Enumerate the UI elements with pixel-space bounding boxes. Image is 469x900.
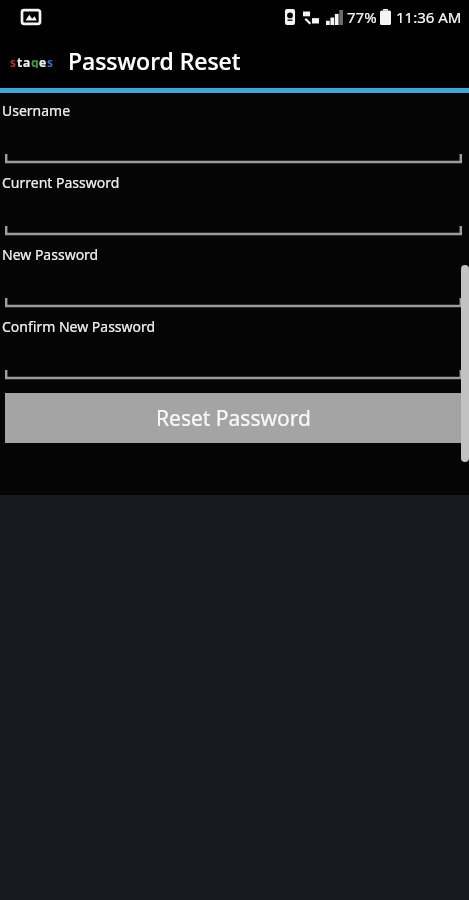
staticText: t [17, 54, 23, 68]
staticText: New Password [2, 245, 99, 264]
staticText: e [39, 54, 47, 68]
staticText: s [10, 54, 17, 68]
other: Screenshot [22, 8, 40, 26]
button[interactable]: Reset Password [5, 393, 462, 443]
button[interactable]: Current Password [0, 165, 469, 237]
staticText: 11:36 AM [396, 7, 462, 27]
button[interactable]: Username [0, 93, 469, 165]
staticText: g [31, 54, 39, 68]
button[interactable]: New Password [0, 237, 469, 309]
staticText: Current Password [2, 173, 120, 192]
staticText: s [47, 54, 54, 68]
staticText: 77% [347, 7, 377, 27]
staticText: Confirm New Password [2, 317, 156, 336]
staticText: Password Reset [68, 45, 241, 76]
staticText: Reset Password [156, 404, 311, 433]
other: stages logo [10, 54, 54, 68]
staticText: Username [2, 101, 71, 120]
staticText: a [23, 54, 31, 68]
button[interactable]: Confirm New Password [0, 309, 469, 381]
